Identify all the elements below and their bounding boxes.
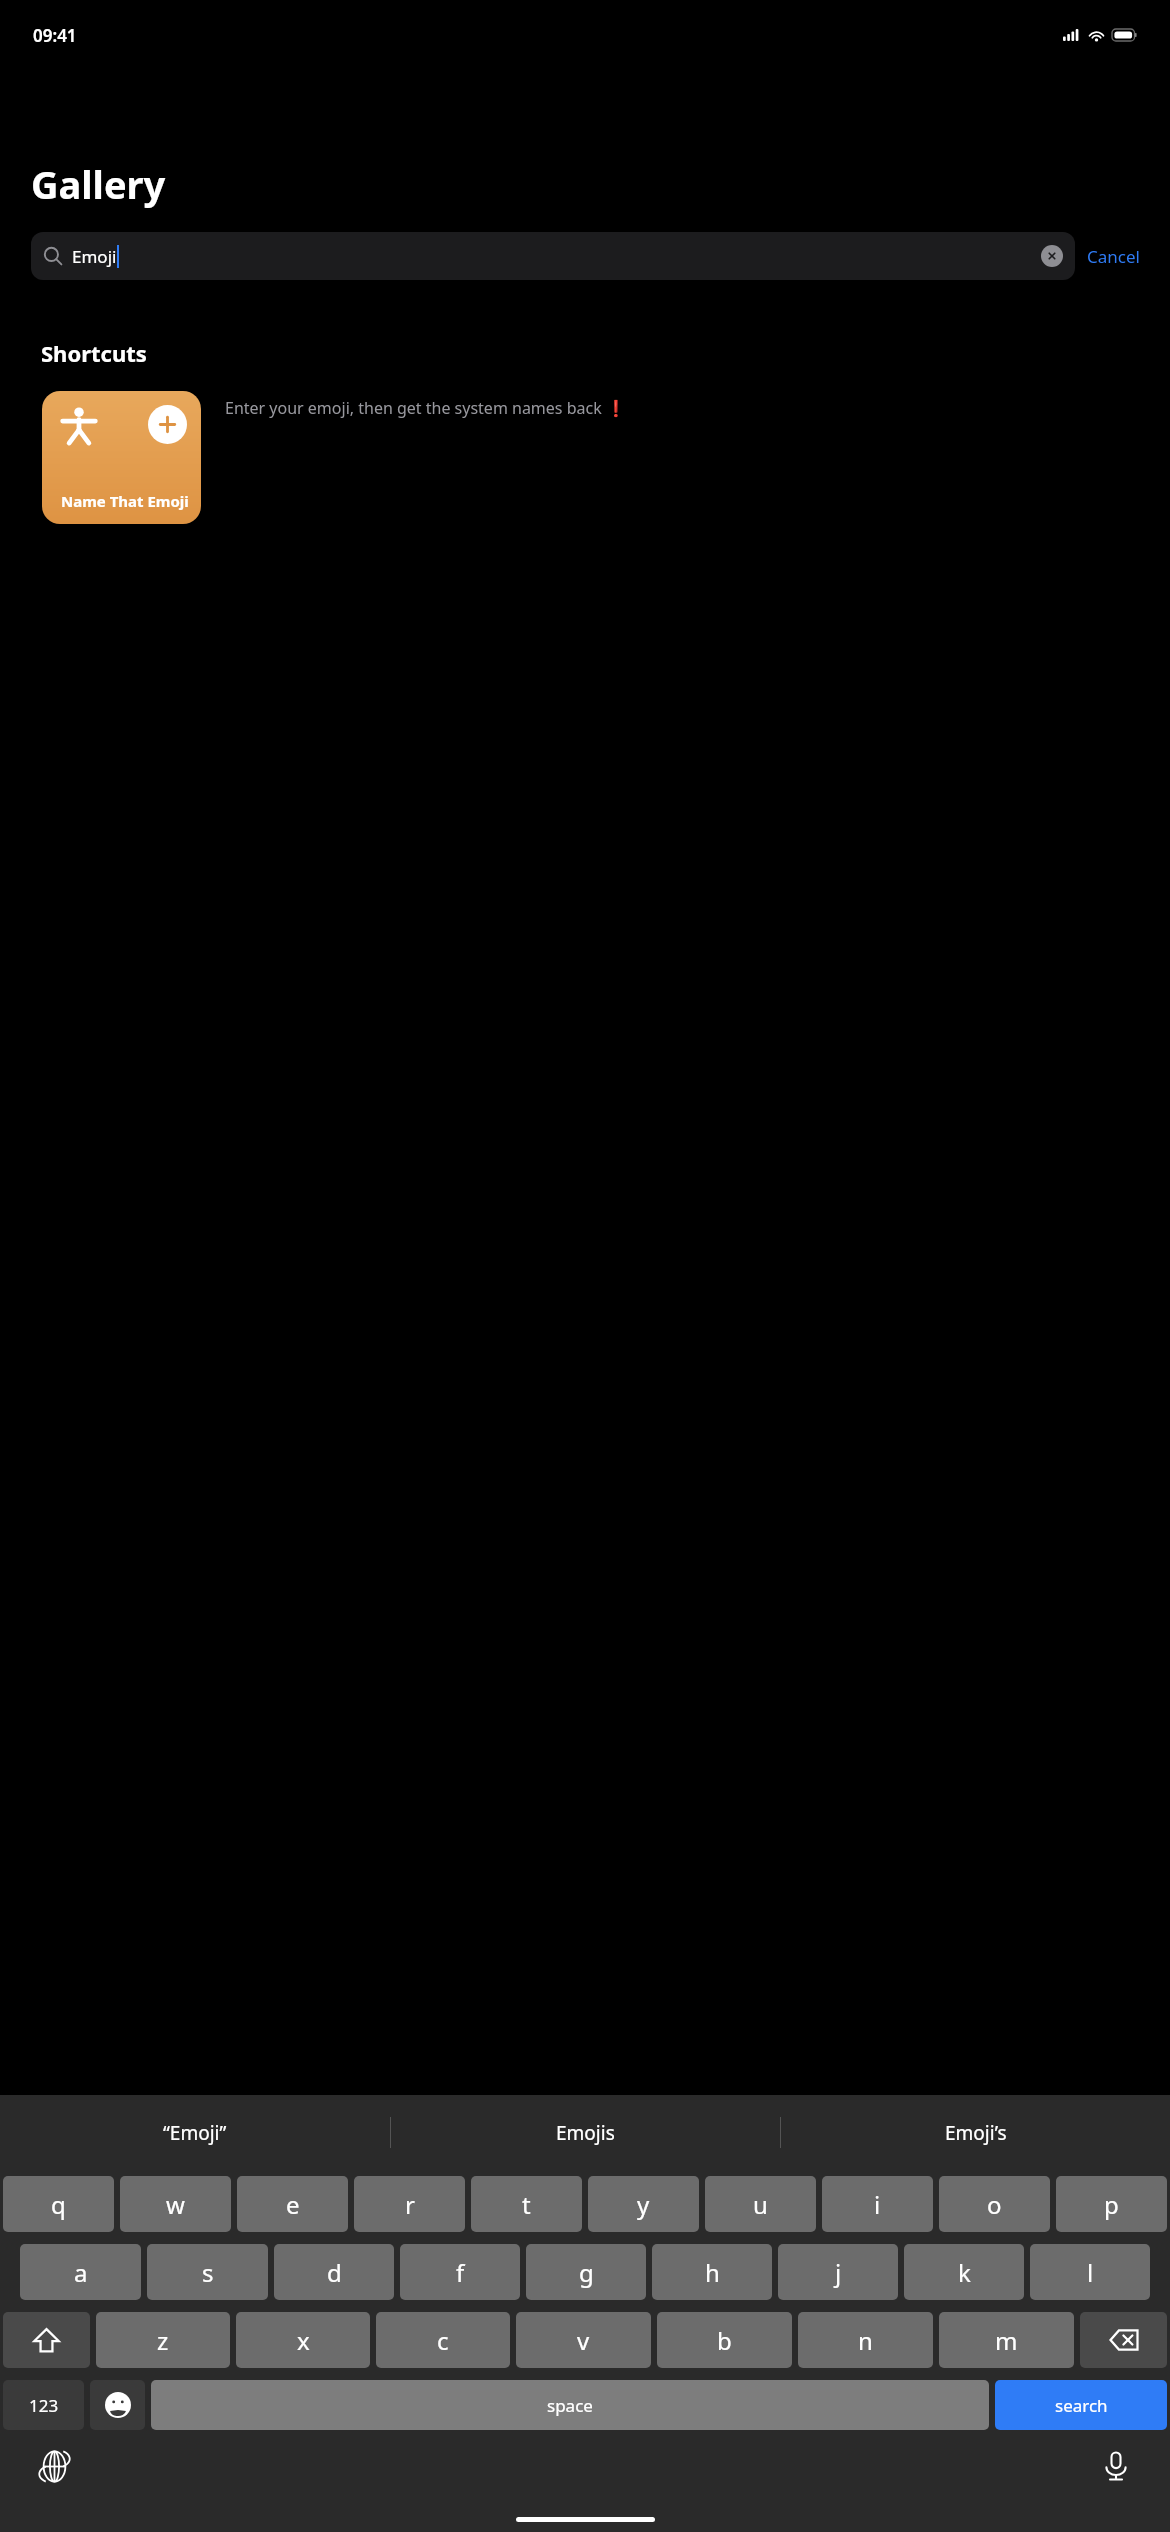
button[interactable]: Add shortcut <box>148 405 187 444</box>
button[interactable]: Cancel <box>1075 237 1152 276</box>
button[interactable]: q <box>3 2176 114 2232</box>
button[interactable]: Shift <box>3 2312 90 2368</box>
staticText: s <box>202 2256 214 2289</box>
staticText: n <box>858 2324 873 2357</box>
staticText: 123 <box>29 2394 59 2417</box>
button[interactable]: space <box>151 2380 989 2430</box>
button[interactable]: x <box>236 2312 370 2368</box>
button[interactable]: search <box>995 2380 1167 2430</box>
button[interactable]: Clear text <box>1041 245 1063 267</box>
staticText: Emojis <box>556 2120 615 2146</box>
button[interactable]: o <box>939 2176 1050 2232</box>
button[interactable]: i <box>822 2176 933 2232</box>
button[interactable]: 123 <box>3 2380 84 2430</box>
staticText: Cancel <box>1087 245 1140 268</box>
button[interactable]: h <box>652 2244 772 2300</box>
button[interactable]: w <box>120 2176 231 2232</box>
button[interactable]: s <box>147 2244 268 2300</box>
staticText: “Emoji” <box>163 2120 227 2146</box>
button[interactable]: d <box>274 2244 394 2300</box>
staticText: Enter your emoji, then get the system na… <box>225 397 626 419</box>
staticText: search <box>1055 2394 1108 2417</box>
button[interactable]: v <box>516 2312 651 2368</box>
staticText: Name That Emoji <box>61 491 189 511</box>
staticText: Shortcuts <box>41 338 147 368</box>
staticText: c <box>437 2324 449 2357</box>
staticText: b <box>717 2324 732 2357</box>
button[interactable]: g <box>526 2244 646 2300</box>
button[interactable]: f <box>400 2244 520 2300</box>
staticText: h <box>705 2256 720 2289</box>
button[interactable]: a <box>20 2244 141 2300</box>
staticText: p <box>1104 2188 1119 2221</box>
staticText: z <box>157 2324 169 2357</box>
staticText: 09:41 <box>33 24 77 47</box>
button[interactable]: n <box>798 2312 933 2368</box>
staticText: d <box>327 2256 342 2289</box>
staticText: e <box>286 2188 300 2221</box>
staticText: i <box>874 2188 881 2221</box>
button[interactable]: e <box>237 2176 348 2232</box>
staticText: f <box>456 2256 465 2289</box>
button[interactable]: y <box>588 2176 699 2232</box>
button[interactable]: u <box>705 2176 816 2232</box>
staticText: w <box>166 2188 185 2221</box>
staticText: q <box>51 2188 66 2221</box>
button[interactable]: b <box>657 2312 792 2368</box>
button[interactable]: Change keyboard <box>30 2442 78 2490</box>
staticText: j <box>835 2256 842 2289</box>
button[interactable]: r <box>354 2176 465 2232</box>
staticText: t <box>522 2188 531 2221</box>
staticText: o <box>987 2188 1002 2221</box>
staticText: l <box>1087 2256 1094 2289</box>
button[interactable]: p <box>1056 2176 1167 2232</box>
button[interactable]: “Emoji” <box>0 2095 390 2170</box>
staticText: m <box>995 2324 1018 2357</box>
staticText: g <box>579 2256 594 2289</box>
button[interactable]: Emoji keyboard <box>90 2380 145 2430</box>
button[interactable]: k <box>904 2244 1024 2300</box>
button[interactable]: Emoji’s <box>781 2095 1170 2170</box>
staticText: x <box>297 2324 310 2357</box>
button[interactable]: z <box>96 2312 230 2368</box>
button[interactable]: Backspace <box>1080 2312 1167 2368</box>
button[interactable]: Add shortcut <box>42 391 201 524</box>
staticText: Emoji’s <box>945 2120 1007 2146</box>
button[interactable]: Emojis <box>391 2095 780 2170</box>
button[interactable]: c <box>376 2312 510 2368</box>
staticText: Gallery <box>31 158 166 210</box>
staticText: Emoji <box>72 245 117 268</box>
button[interactable]: Emoji <box>31 232 1075 280</box>
staticText: r <box>405 2188 415 2221</box>
staticText: k <box>958 2256 971 2289</box>
button[interactable]: j <box>778 2244 898 2300</box>
staticText: y <box>637 2188 650 2221</box>
button[interactable]: Dictation <box>1092 2442 1140 2490</box>
staticText: space <box>547 2394 593 2417</box>
button[interactable]: l <box>1030 2244 1150 2300</box>
button[interactable]: t <box>471 2176 582 2232</box>
staticText: u <box>753 2188 768 2221</box>
staticText: a <box>74 2256 88 2289</box>
staticText: v <box>577 2324 590 2357</box>
button[interactable]: m <box>939 2312 1074 2368</box>
